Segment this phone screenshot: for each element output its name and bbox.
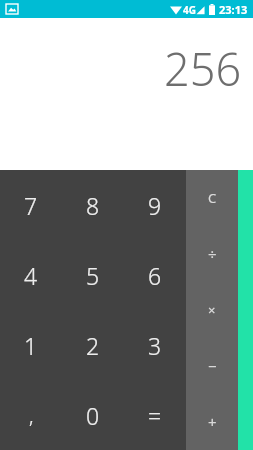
staticText: 6	[148, 260, 162, 291]
staticText: 7	[24, 190, 38, 221]
button[interactable]: =	[124, 380, 186, 450]
button[interactable]: 1	[0, 310, 62, 380]
button[interactable]: 6	[124, 240, 186, 310]
staticText: −	[208, 356, 217, 376]
button[interactable]: 4	[0, 240, 62, 310]
staticText: 2	[86, 330, 100, 361]
staticText: ,	[29, 402, 34, 429]
staticText: 5	[86, 260, 100, 291]
button[interactable]: Clear	[186, 170, 238, 226]
button[interactable]: Minus	[186, 338, 238, 394]
staticText: ÷	[208, 244, 217, 264]
staticText: 4G	[183, 3, 196, 17]
staticText: 4	[24, 260, 38, 291]
staticText: 8	[86, 190, 100, 221]
staticText: +	[208, 412, 217, 432]
staticText: 1	[24, 330, 38, 361]
staticText: 256	[164, 38, 242, 99]
staticText: =	[148, 400, 162, 431]
other: Screenshot	[6, 4, 18, 14]
staticText: 3	[148, 330, 162, 361]
button[interactable]: Divide	[186, 226, 238, 282]
button[interactable]: 7	[0, 170, 62, 240]
staticText: 23:13	[219, 2, 248, 17]
button[interactable]: 9	[124, 170, 186, 240]
button[interactable]: 3	[124, 310, 186, 380]
button[interactable]: 0	[62, 380, 124, 450]
button[interactable]: ,	[0, 380, 62, 450]
button[interactable]: 5	[62, 240, 124, 310]
button[interactable]: 8	[62, 170, 124, 240]
button[interactable]: 2	[62, 310, 124, 380]
staticText: 0	[86, 400, 100, 431]
staticText: 9	[148, 190, 162, 221]
button[interactable]: Multiply	[186, 282, 238, 338]
button[interactable]: Plus	[186, 394, 238, 450]
staticText: C	[208, 189, 217, 207]
staticText: ×	[208, 301, 216, 319]
